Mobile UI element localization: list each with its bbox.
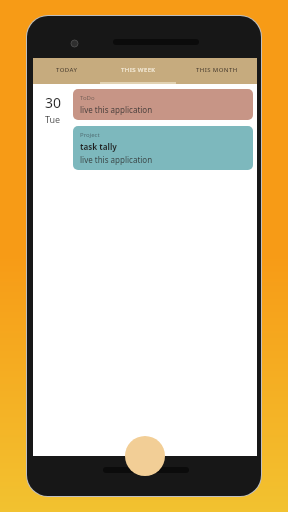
button[interactable]: Add task: [125, 436, 165, 476]
staticText: Project: [80, 131, 100, 139]
button[interactable]: THIS WEEK: [100, 58, 176, 82]
button[interactable]: ToDo: [73, 89, 253, 120]
button[interactable]: Project: [73, 126, 253, 170]
staticText: TODAY: [56, 66, 78, 74]
button[interactable]: TODAY: [33, 58, 100, 82]
staticText: THIS WEEK: [121, 66, 156, 74]
staticText: ToDo: [80, 94, 95, 102]
staticText: 30: [45, 93, 62, 112]
button[interactable]: THIS MONTH: [176, 58, 257, 82]
staticText: live this application: [80, 104, 153, 115]
staticText: THIS MONTH: [196, 66, 238, 74]
staticText: task tally: [80, 141, 117, 152]
staticText: live this application: [80, 154, 153, 165]
staticText: Tue: [45, 113, 61, 125]
